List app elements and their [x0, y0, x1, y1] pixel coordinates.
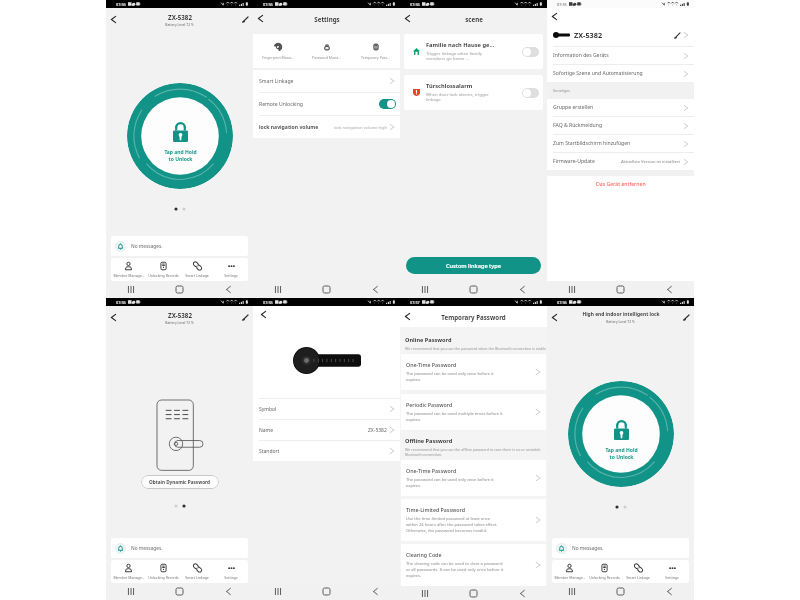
button[interactable]: Unlocking Records: [146, 560, 180, 583]
button[interactable]: Information des Geräts: [547, 47, 694, 64]
staticText: 07:55: [263, 300, 273, 305]
button[interactable]: Symbol: [253, 399, 400, 419]
button[interactable]: Remote Unlocking: [253, 93, 400, 115]
button[interactable]: Smart Linkage: [180, 258, 214, 281]
button[interactable]: Back: [254, 12, 267, 25]
staticText: ZX-5382: [168, 311, 192, 319]
button[interactable]: Recents: [547, 281, 596, 298]
button[interactable]: One-Time Password: [401, 354, 546, 390]
button[interactable]: FAQ & Rückmeldung: [547, 117, 694, 134]
button[interactable]: Tap and Hold to Unlock: [568, 381, 674, 487]
staticText: Clearing Code: [406, 551, 442, 558]
button[interactable]: Recents: [253, 281, 302, 298]
button[interactable]: Back: [498, 586, 547, 600]
button[interactable]: Back: [401, 12, 414, 25]
button[interactable]: Unlocking Records: [146, 258, 180, 281]
button[interactable]: Familie nach Hause ge...: [404, 34, 543, 69]
button[interactable]: Home: [155, 281, 204, 298]
button[interactable]: Back: [498, 281, 547, 298]
button[interactable]: Home: [302, 281, 351, 298]
button[interactable]: Member Manage...: [552, 560, 587, 583]
button[interactable]: Custom linkage type: [406, 257, 541, 274]
button[interactable]: Recents: [400, 586, 449, 600]
button[interactable]: Edit: [239, 311, 252, 324]
button[interactable]: Edit: [680, 311, 693, 324]
button[interactable]: Back: [548, 311, 561, 324]
button[interactable]: Periodic Password: [401, 394, 546, 430]
button[interactable]: Smart Linkage: [621, 560, 655, 583]
button[interactable]: Member Manage...: [111, 560, 146, 583]
button[interactable]: Back: [257, 308, 270, 321]
button[interactable]: Settings: [214, 258, 248, 281]
button[interactable]: Home: [449, 586, 498, 600]
button[interactable]: Recents: [400, 281, 449, 298]
button[interactable]: Zum Startbildschirm hinzufügen: [547, 135, 694, 152]
staticText: Use the time-limited password at least o…: [406, 516, 498, 534]
button[interactable]: Recents: [106, 281, 155, 298]
staticText: We recommend that you use the password w…: [405, 346, 546, 351]
button[interactable]: Back: [351, 583, 400, 600]
button[interactable]: Das Gerät entfernen: [547, 176, 694, 191]
staticText: 07:57: [410, 300, 420, 305]
button[interactable]: Clearing Code: [401, 544, 546, 586]
staticText: ZX-5382: [168, 13, 192, 21]
button[interactable]: Standort: [253, 441, 400, 461]
button[interactable]: Temporary Pass...: [351, 43, 400, 60]
button[interactable]: Home: [449, 281, 498, 298]
staticText: 07:56: [116, 2, 126, 7]
staticText: Member Manage...: [554, 575, 586, 580]
button[interactable]: Back: [107, 13, 120, 26]
button[interactable]: Back: [401, 310, 414, 323]
button[interactable]: Tap and Hold to Unlock: [127, 83, 233, 189]
staticText: 07:56: [557, 300, 567, 305]
button[interactable]: Sofortige Szene und Automatisierung: [547, 65, 694, 82]
button[interactable]: Edit: [239, 13, 252, 26]
staticText: Member Manage...: [113, 273, 145, 278]
staticText: Battery Level 72 %: [165, 22, 194, 26]
button[interactable]: Fingerprint Mana...: [253, 43, 302, 60]
staticText: ZX-5382: [368, 427, 387, 434]
button[interactable]: Home: [596, 281, 645, 298]
staticText: 07:56: [263, 2, 273, 7]
button[interactable]: Back: [204, 281, 253, 298]
button[interactable]: Home: [302, 583, 351, 600]
button[interactable]: ZX-5382: [547, 24, 694, 46]
button[interactable]: lock navigation volume: [253, 116, 400, 138]
button[interactable]: Obtain Dynamic Password: [141, 475, 219, 489]
button[interactable]: Recents: [106, 583, 155, 600]
button[interactable]: Back: [204, 583, 253, 600]
button[interactable]: Home: [155, 583, 204, 600]
staticText: Unlocking Records: [589, 575, 620, 580]
button[interactable]: [522, 88, 539, 98]
button[interactable]: Back: [548, 10, 561, 23]
button[interactable]: Firmware-Update: [547, 153, 694, 170]
button[interactable]: Recents: [253, 583, 302, 600]
button[interactable]: Time-Limited Password: [401, 499, 546, 541]
button[interactable]: Back: [645, 583, 694, 600]
button[interactable]: Türschlossalarm: [404, 75, 543, 110]
button[interactable]: One-Time Password: [401, 460, 546, 496]
button[interactable]: Recents: [547, 583, 596, 600]
button[interactable]: Smart Linkage: [180, 560, 214, 583]
button[interactable]: Settings: [655, 560, 689, 583]
button[interactable]: Name: [253, 420, 400, 440]
button[interactable]: Settings: [214, 560, 248, 583]
button[interactable]: Password Mana...: [302, 43, 351, 60]
button[interactable]: Back: [107, 311, 120, 324]
button[interactable]: No messages.: [111, 538, 248, 558]
button[interactable]: [522, 47, 539, 57]
button[interactable]: Unlocking Records: [587, 560, 621, 583]
button[interactable]: Back: [645, 281, 694, 298]
staticText: Tap and Hold to Unlock: [605, 447, 638, 460]
button[interactable]: Back: [351, 281, 400, 298]
button[interactable]: Member Manage...: [111, 258, 146, 281]
staticText: Online Password: [405, 336, 452, 344]
button[interactable]: No messages.: [111, 236, 248, 256]
button[interactable]: Home: [596, 583, 645, 600]
staticText: Smart Linkage: [259, 78, 294, 85]
button[interactable]: Gruppe erstellen: [547, 99, 694, 116]
staticText: Settings: [665, 575, 679, 580]
button[interactable]: No messages.: [552, 538, 689, 558]
button[interactable]: Smart Linkage: [253, 70, 400, 92]
staticText: One-Time Password: [406, 361, 457, 368]
